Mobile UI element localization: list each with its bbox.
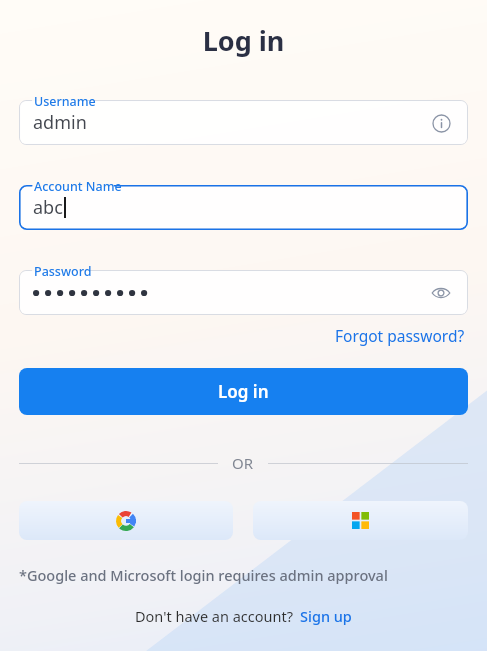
staticText: Don't have an account? <box>135 606 293 626</box>
staticText: Password <box>34 263 92 280</box>
button[interactable]: Forgot password? <box>333 323 467 348</box>
button[interactable]: abc <box>19 185 468 230</box>
button[interactable]: Sign up <box>300 606 352 626</box>
staticText: *Google and Microsoft login requires adm… <box>19 565 487 585</box>
button[interactable]: Show password <box>426 278 456 308</box>
button[interactable]: Show password <box>19 270 468 315</box>
button[interactable]: Sign in with Google <box>19 501 233 540</box>
staticText: Log in <box>0 22 487 59</box>
staticText: Username <box>34 93 96 110</box>
button[interactable]: Log in <box>19 368 468 415</box>
staticText: OR <box>232 453 254 473</box>
button[interactable]: admin <box>19 100 468 145</box>
staticText: admin <box>33 110 87 135</box>
staticText: abc <box>33 195 63 220</box>
button[interactable]: Information <box>426 108 456 138</box>
button[interactable]: Sign in with Microsoft <box>253 501 468 540</box>
staticText: Account Name <box>34 178 122 195</box>
staticText: Log in <box>218 380 269 403</box>
